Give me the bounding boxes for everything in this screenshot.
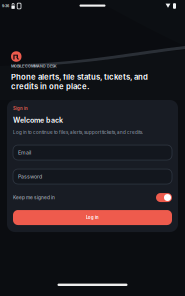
staticText: MOBILE COMMAND DESK bbox=[11, 64, 57, 68]
staticText: Password bbox=[18, 173, 42, 180]
staticText: Welcome back bbox=[13, 116, 63, 124]
button[interactable]: Email bbox=[13, 145, 172, 160]
staticText: Log in bbox=[86, 215, 99, 220]
button[interactable]: Password bbox=[13, 169, 172, 184]
staticText: Keep me signed in bbox=[13, 195, 55, 200]
staticText: Email bbox=[18, 149, 31, 156]
button[interactable]: Log in bbox=[13, 210, 172, 225]
button[interactable]: Keep me signed in bbox=[156, 193, 172, 202]
staticText: Phone alerts, file status, tickets, and … bbox=[11, 72, 148, 91]
staticText: Sign in bbox=[13, 106, 28, 111]
staticText: 9:36 bbox=[2, 4, 9, 8]
staticText: Log in to continue to files, alerts, sup… bbox=[13, 130, 143, 135]
